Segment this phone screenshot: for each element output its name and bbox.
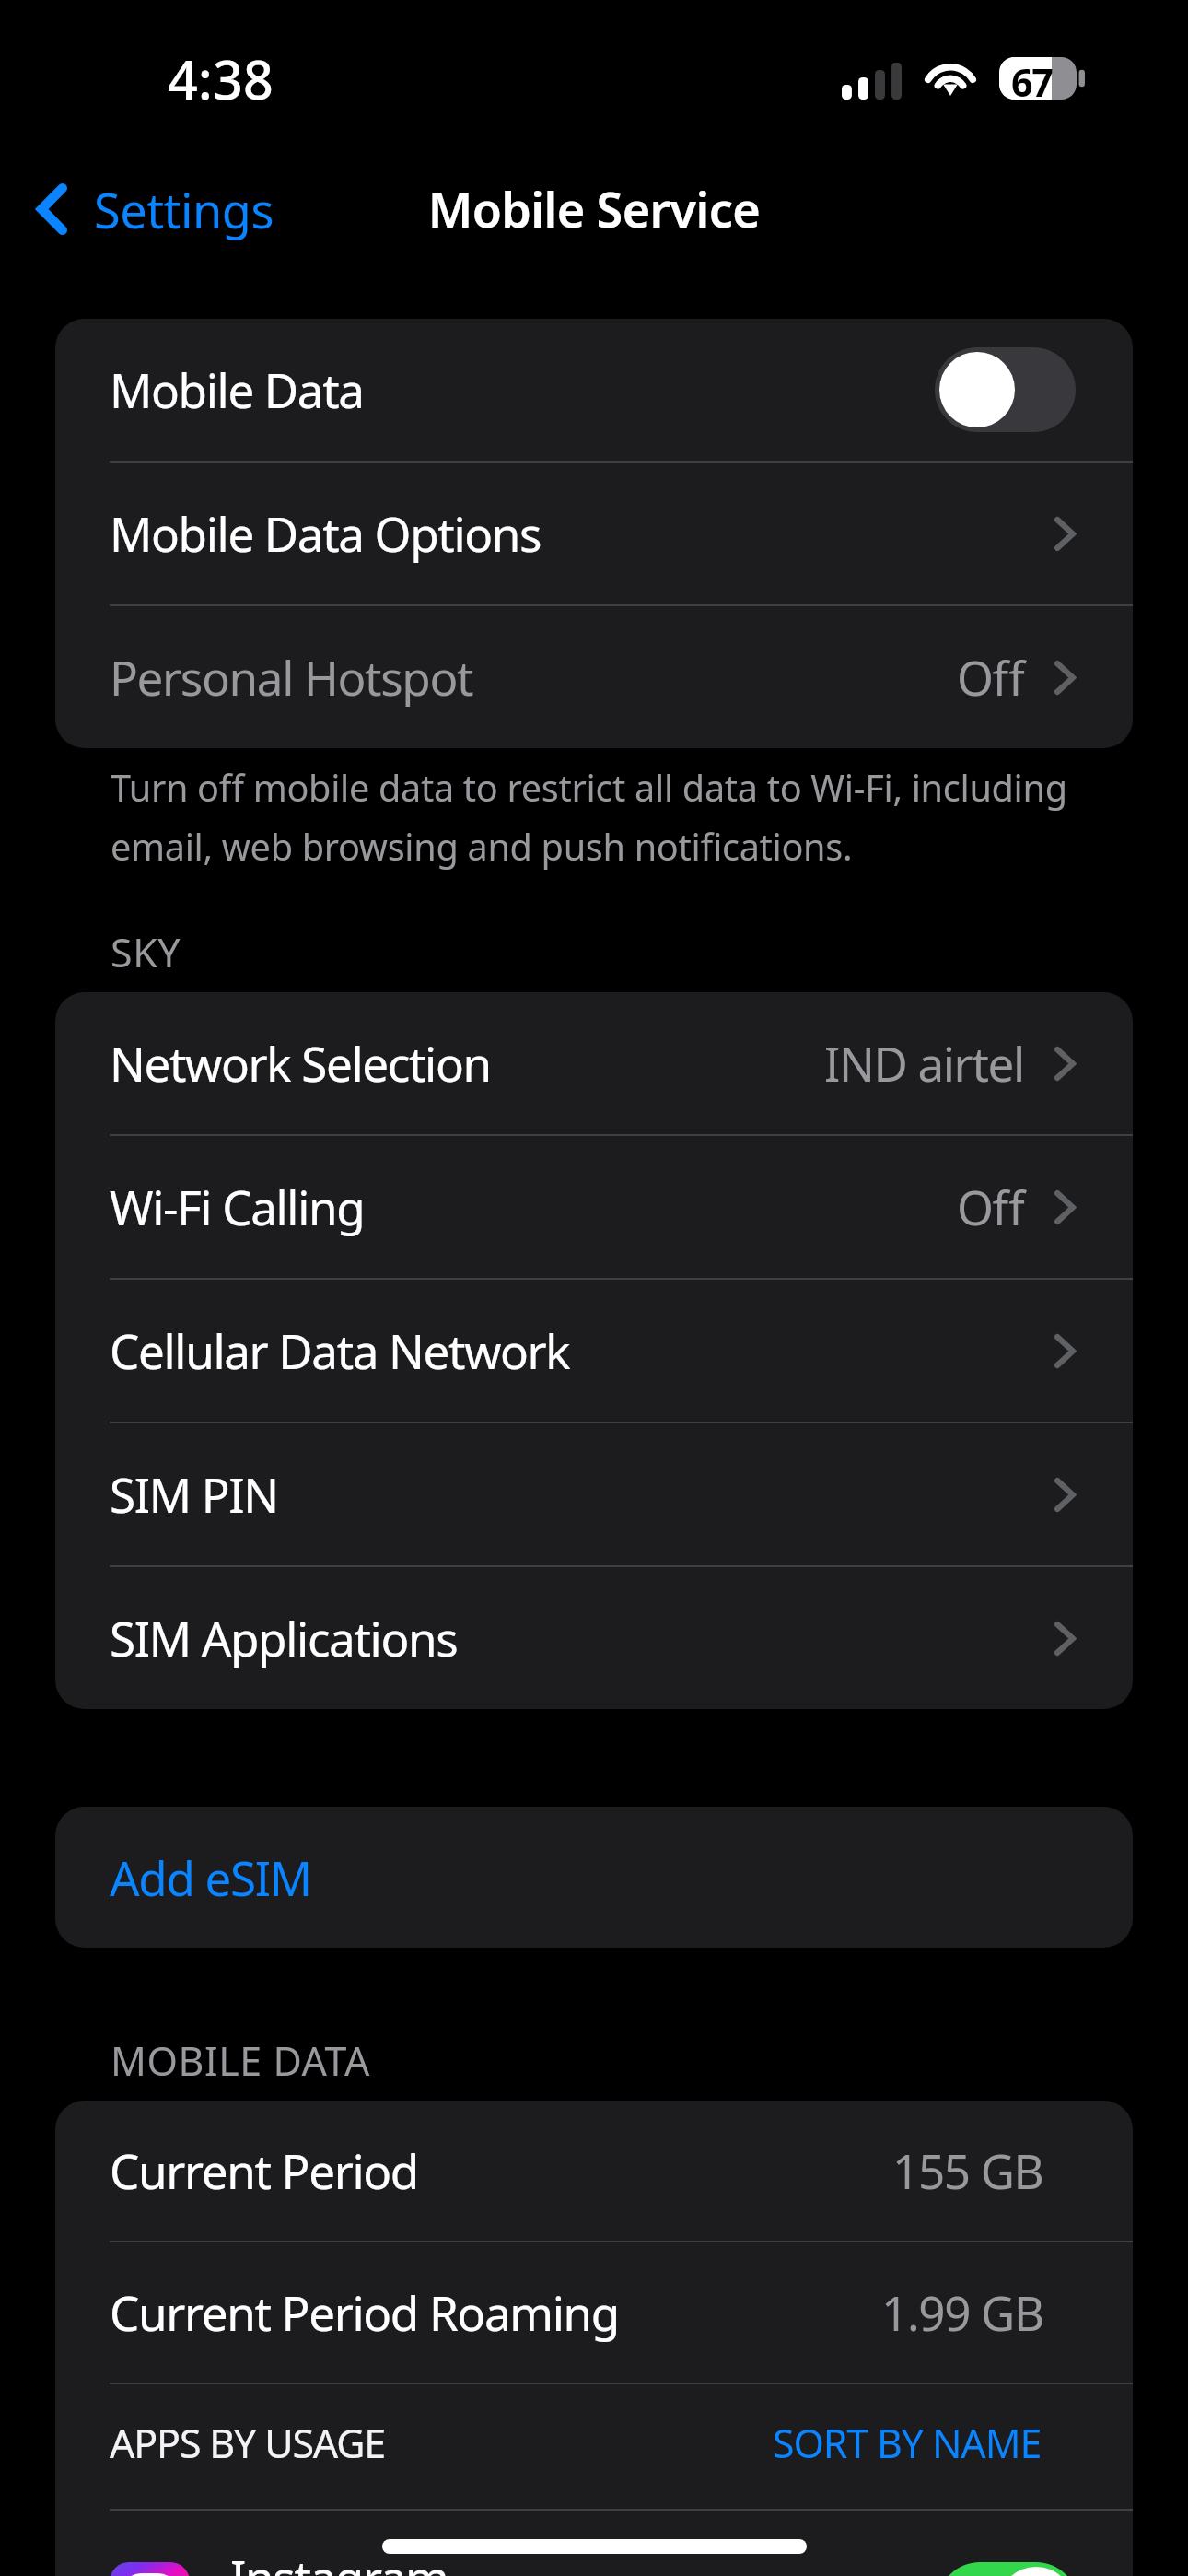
staticText: 155 GB (892, 2138, 1043, 2203)
button[interactable]: Instagram mobile data toggle (938, 2562, 1078, 2576)
button[interactable]: Mobile Data toggle (935, 347, 1076, 432)
button[interactable]: SIM PIN (55, 1423, 1133, 1565)
button[interactable]: Add eSIM (55, 1807, 1133, 1948)
staticText: Current Period Roaming (110, 2280, 619, 2345)
button[interactable]: Cellular Data Network (55, 1280, 1133, 1422)
staticText: Network Selection (110, 1031, 491, 1095)
button[interactable]: Current Period (55, 2101, 1133, 2241)
staticText: Cellular Data Network (110, 1318, 570, 1383)
staticText: SORT BY NAME (773, 2416, 1042, 2469)
staticText: IND airtel (824, 1031, 1024, 1095)
button[interactable]: SORT BY NAME (773, 2399, 1042, 2486)
staticText: 4:38 (168, 43, 274, 115)
button[interactable]: Personal Hotspot (55, 606, 1133, 748)
staticText: Personal Hotspot (110, 645, 473, 709)
button[interactable]: Current Period Roaming (55, 2242, 1133, 2383)
staticText: Add eSIM (110, 1845, 311, 1910)
staticText: SIM PIN (110, 1462, 278, 1527)
staticText: APPS BY USAGE (110, 2416, 386, 2469)
staticText: Turn off mobile data to restrict all dat… (111, 763, 1133, 872)
staticText: Wi-Fi Calling (110, 1175, 365, 1239)
staticText: SKY (111, 925, 181, 978)
button[interactable]: Network Selection (55, 992, 1133, 1134)
staticText: SIM Applications (110, 1606, 458, 1670)
staticText: Mobile Data Options (110, 501, 542, 566)
button[interactable]: Settings (0, 151, 301, 267)
staticText: Current Period (110, 2138, 418, 2203)
button[interactable]: Wi-Fi Calling (55, 1136, 1133, 1278)
staticText: Off (957, 1175, 1024, 1239)
staticText: MOBILE DATA (111, 2033, 370, 2087)
staticText: Instagram (230, 2545, 448, 2576)
button[interactable]: Mobile Data (55, 319, 1133, 461)
staticText: Off (957, 645, 1024, 709)
staticText: Mobile Service (0, 176, 1188, 241)
staticText: 67 (1011, 56, 1053, 99)
button[interactable]: SIM Applications (55, 1567, 1133, 1709)
button[interactable]: Instagram (55, 2511, 1133, 2576)
staticText: 1.99 GB (881, 2280, 1043, 2345)
staticText: Settings (94, 177, 274, 242)
button[interactable]: Mobile Data Options (55, 463, 1133, 604)
staticText: Mobile Data (110, 357, 364, 422)
